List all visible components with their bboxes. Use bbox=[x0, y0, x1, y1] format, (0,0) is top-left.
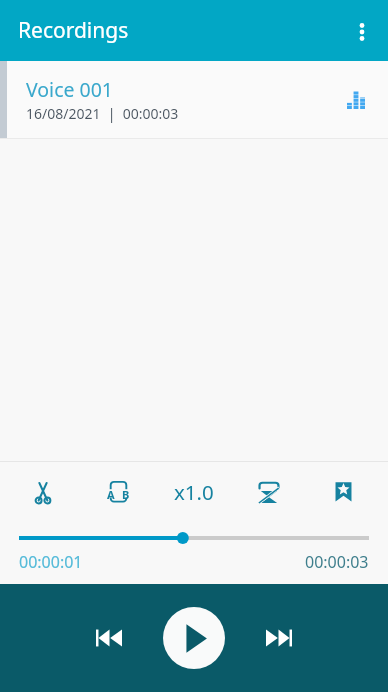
staticText: B bbox=[122, 487, 130, 502]
button[interactable]: Previous bbox=[85, 614, 133, 662]
staticText: 16/08/2021 | 00:00:03 bbox=[26, 104, 179, 123]
button[interactable]: AB repeat bbox=[81, 467, 156, 516]
staticText: A bbox=[107, 487, 115, 502]
button[interactable]: Trim bbox=[5, 467, 81, 516]
button[interactable]: Skip silence bbox=[231, 467, 306, 516]
button[interactable]: Play bbox=[163, 607, 225, 669]
button[interactable]: Voice 001 bbox=[0, 61, 388, 138]
button[interactable]: x1.0 bbox=[156, 467, 231, 516]
staticText: 00:00:01 bbox=[19, 551, 83, 573]
button[interactable]: Waveform bbox=[339, 83, 373, 117]
staticText: x1.0 bbox=[174, 478, 214, 506]
button[interactable]: Seek bar bbox=[0, 516, 388, 560]
staticText: 00:00:03 bbox=[305, 551, 369, 573]
staticText: Voice 001 bbox=[26, 76, 114, 103]
button[interactable]: Next bbox=[255, 614, 303, 662]
button[interactable]: Bookmark bbox=[306, 467, 381, 516]
button[interactable]: More options bbox=[340, 9, 384, 53]
staticText: Recordings bbox=[18, 16, 129, 45]
